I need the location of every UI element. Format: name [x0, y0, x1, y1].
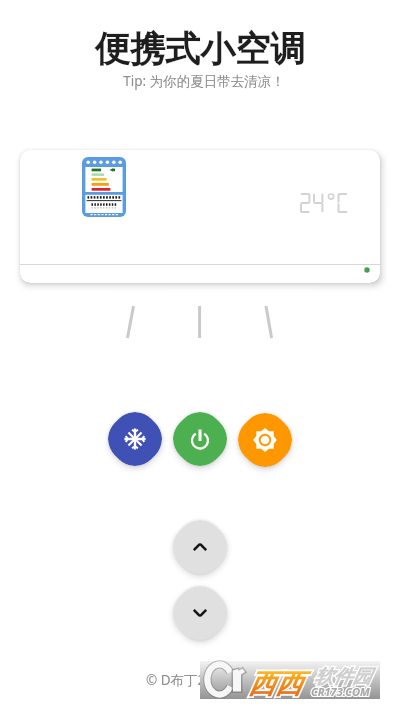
- button[interactable]: Brightness: [238, 413, 292, 467]
- staticText: 西西: [248, 667, 302, 701]
- staticText: 软件园: [314, 665, 371, 689]
- button[interactable]: Decrease temperature: [173, 586, 227, 640]
- staticText: © D布丁2018/1/1: [146, 671, 254, 689]
- button[interactable]: Power: [173, 412, 227, 466]
- staticText: Tip: 为你的夏日带去清凉！: [123, 72, 285, 90]
- button[interactable]: Increase temperature: [173, 520, 227, 574]
- staticText: 便携式小空调: [95, 27, 305, 71]
- staticText: CR173.COM: [311, 684, 370, 699]
- staticText: 西西: [248, 667, 302, 701]
- staticText: 软件园: [314, 665, 371, 689]
- button[interactable]: Cool mode: [108, 412, 162, 466]
- button[interactable]: [20, 150, 380, 283]
- staticText: CR173.COM: [311, 684, 370, 699]
